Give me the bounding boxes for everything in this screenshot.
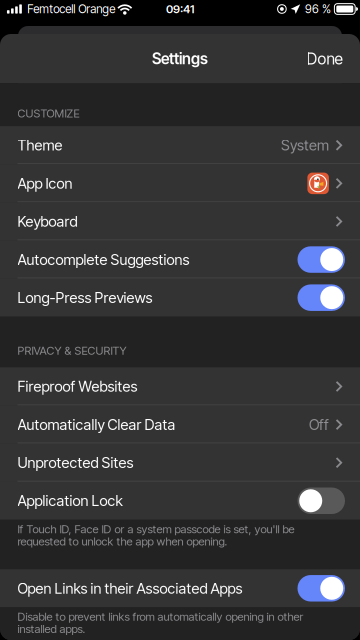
staticText: Done [306, 49, 342, 68]
staticText: Keyboard [17, 213, 77, 230]
staticText: Disable to prevent links from automatica… [17, 610, 303, 636]
staticText: Theme [17, 136, 62, 154]
staticText: Autocomplete Suggestions [17, 251, 189, 268]
button[interactable]: Autocomplete Suggestions [0, 240, 360, 279]
button[interactable]: Open Links in their Associated Apps [0, 569, 360, 607]
staticText: Settings [152, 49, 208, 68]
staticText: 96 % [305, 2, 331, 16]
staticText: System [281, 136, 329, 154]
button[interactable]: Automatically Clear Data [0, 405, 360, 444]
button[interactable]: Unprotected Sites [0, 444, 360, 482]
staticText: App Icon [17, 174, 72, 192]
staticText: Unprotected Sites [17, 454, 133, 471]
staticText: If Touch ID, Face ID or a system passcod… [17, 522, 294, 548]
staticText: Automatically Clear Data [17, 416, 175, 433]
button[interactable]: Long-Press Previews [0, 279, 360, 317]
staticText: PRIVACY & SECURITY [17, 344, 126, 357]
button[interactable]: App Icon [0, 164, 360, 202]
staticText: Application Lock [17, 492, 122, 510]
staticText: Long-Press Previews [17, 289, 152, 306]
button[interactable]: Done [294, 39, 360, 78]
staticText: CUSTOMIZE [17, 106, 79, 120]
staticText: 09:41 [166, 2, 194, 16]
staticText: Off [309, 416, 329, 433]
button[interactable]: Keyboard [0, 202, 360, 240]
button[interactable]: Theme [0, 126, 360, 164]
staticText: Fireproof Websites [17, 378, 137, 395]
button[interactable]: Application Lock [0, 482, 360, 520]
staticText: Femtocell Orange [27, 2, 115, 16]
staticText: Open Links in their Associated Apps [17, 579, 242, 597]
button[interactable]: Fireproof Websites [0, 367, 360, 405]
